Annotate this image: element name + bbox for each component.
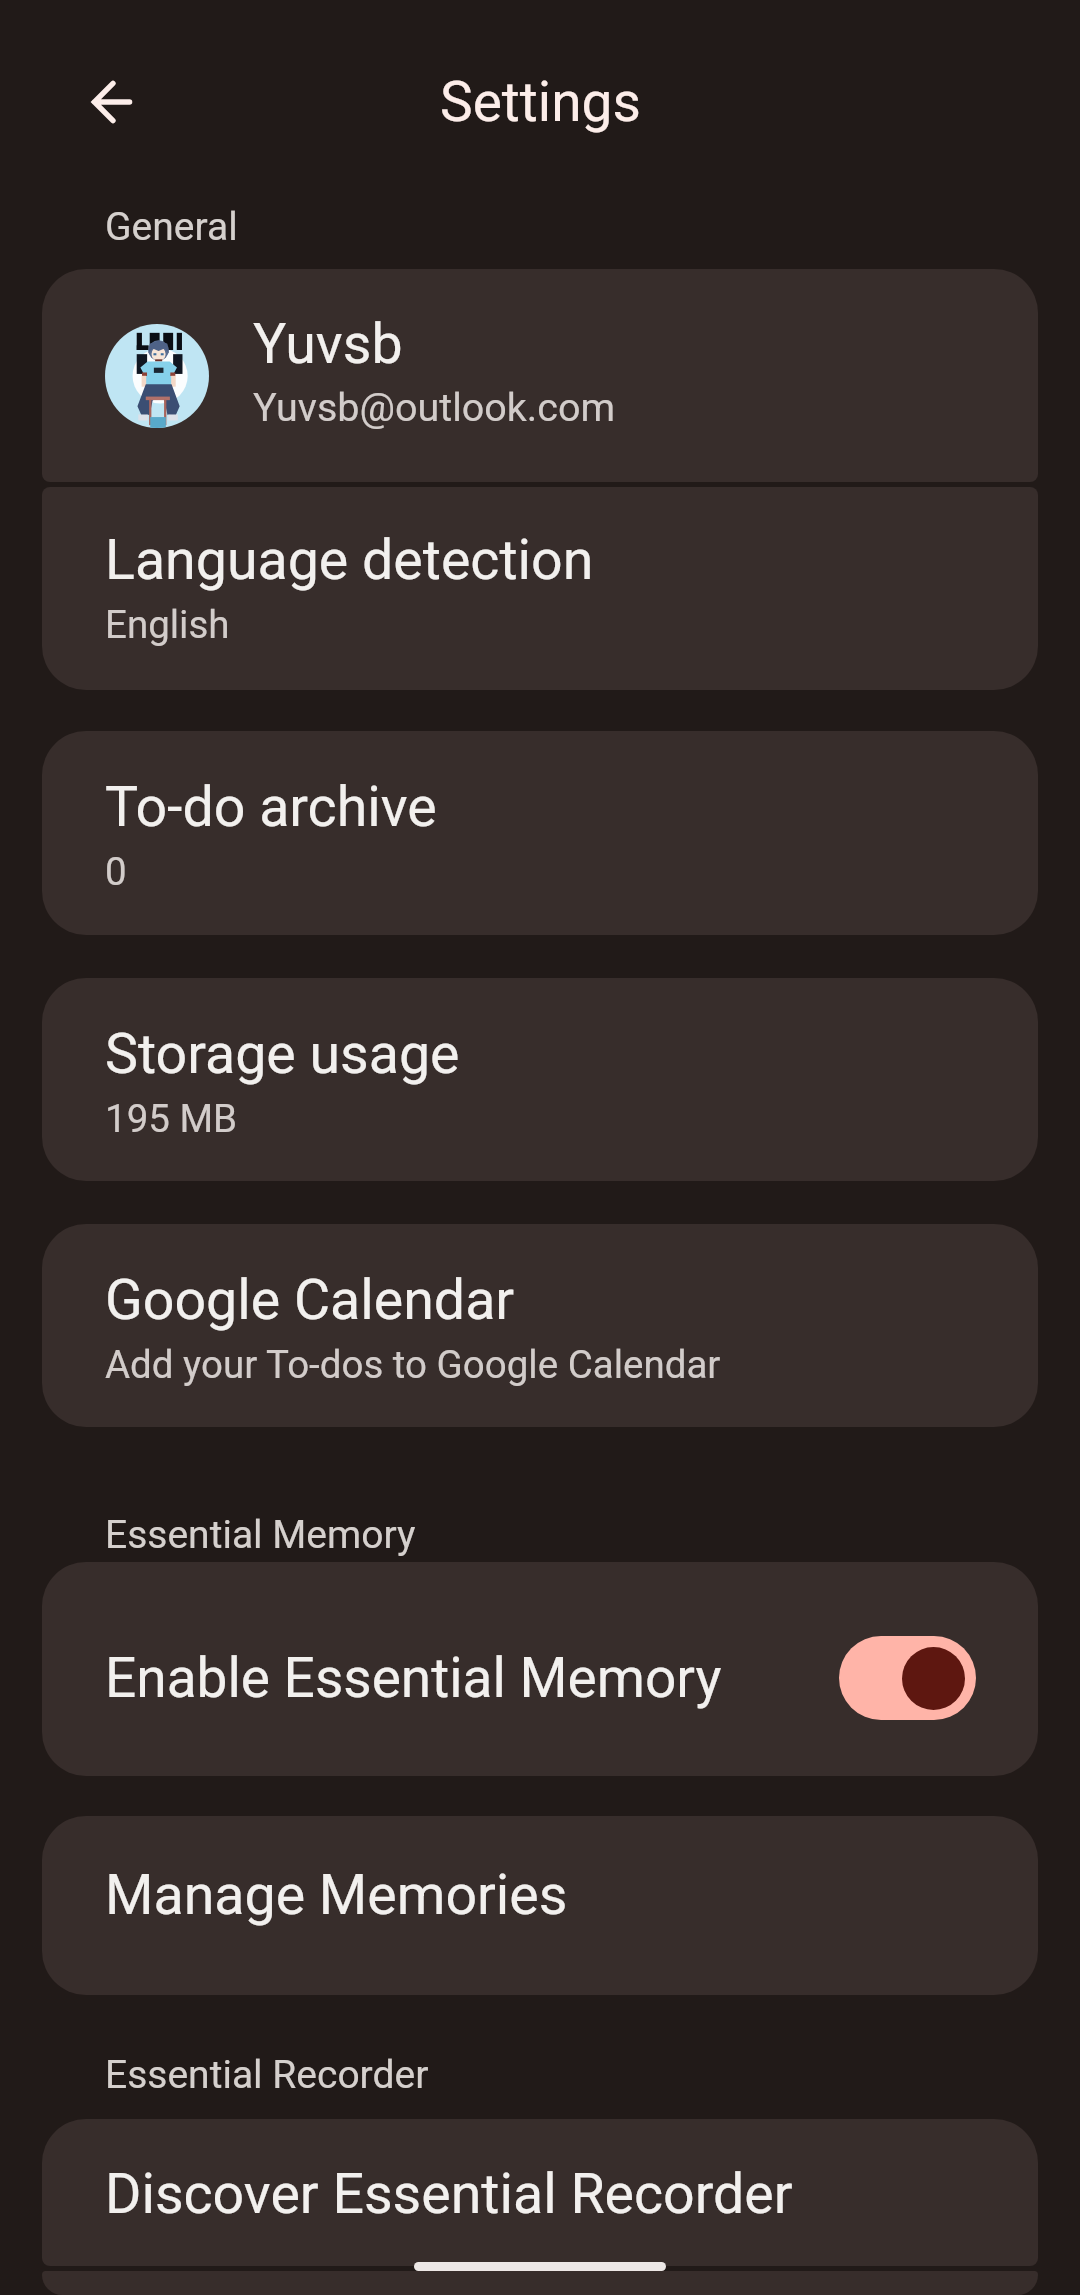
staticText: Yuvsb xyxy=(253,312,403,377)
staticText: 0 xyxy=(105,849,127,894)
button[interactable]: Language detection xyxy=(42,487,1038,690)
staticText: Essential Recorder xyxy=(105,2052,429,2098)
button[interactable]: Google Calendar xyxy=(42,1224,1038,1427)
button[interactable]: Yuvsb xyxy=(42,269,1038,482)
staticText: To-do archive xyxy=(105,775,437,840)
staticText: Storage usage xyxy=(105,1022,460,1087)
button[interactable]: Enable Essential Memory toggle xyxy=(839,1636,976,1720)
staticText: General xyxy=(105,204,238,250)
staticText: Language detection xyxy=(105,528,594,593)
staticText: Yuvsb@outlook.com xyxy=(253,384,616,430)
staticText: Enable Essential Memory xyxy=(105,1646,722,1710)
staticText: 195 MB xyxy=(105,1096,238,1141)
staticText: Google Calendar xyxy=(105,1268,515,1333)
staticText: Add your To-dos to Google Calendar xyxy=(105,1342,721,1387)
staticText: Manage Memories xyxy=(105,1863,568,1928)
button[interactable]: Discover Essential Recorder xyxy=(42,2119,1038,2266)
staticText: Discover Essential Recorder xyxy=(105,2162,793,2227)
button[interactable]: Storage usage xyxy=(42,978,1038,1181)
staticText: Settings xyxy=(440,70,641,134)
button[interactable]: Enable Essential Memory xyxy=(42,1562,1038,1776)
button[interactable]: To-do archive xyxy=(42,731,1038,935)
staticText: English xyxy=(105,602,230,647)
button[interactable]: Manage Memories xyxy=(42,1816,1038,1995)
button[interactable]: Back xyxy=(64,54,160,150)
staticText: Essential Memory xyxy=(105,1512,416,1558)
